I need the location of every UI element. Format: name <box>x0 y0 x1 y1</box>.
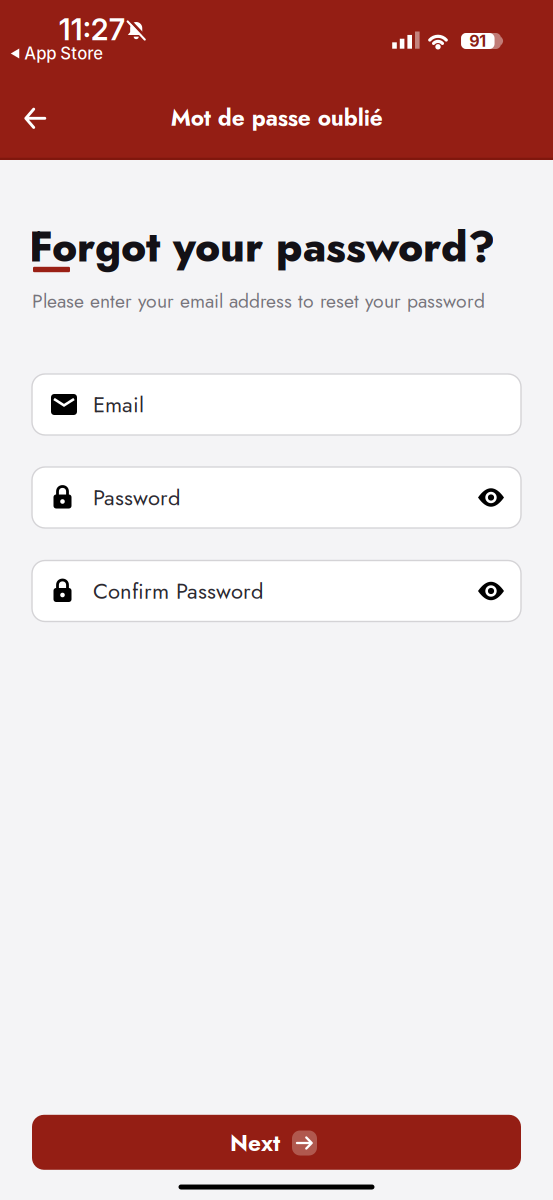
staticText: 91 <box>469 31 486 51</box>
staticText: Next <box>230 1127 280 1159</box>
staticText: Email <box>93 389 144 420</box>
staticText: Password <box>93 482 181 513</box>
staticText: Please enter your email address to reset… <box>32 287 485 315</box>
staticText: Mot de passe oublié <box>171 101 383 134</box>
staticText: App Store <box>24 43 103 64</box>
staticText: 11:27 <box>59 12 125 47</box>
staticText: Confirm Password <box>93 575 264 607</box>
staticText: Forgot your password? <box>29 217 495 277</box>
